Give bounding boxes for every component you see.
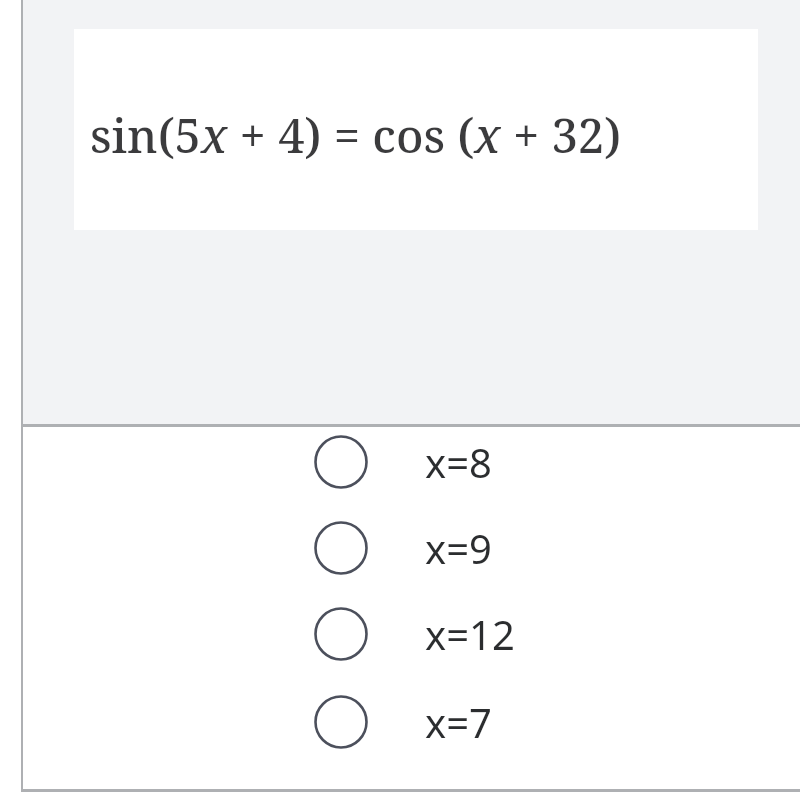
staticText: x=8 (425, 435, 492, 489)
staticText: x=12 (425, 607, 515, 661)
button[interactable]: Option x=8 (23, 434, 800, 520)
button[interactable]: Option x=9 (23, 520, 800, 606)
staticText: x=9 (425, 521, 492, 575)
staticText: x=7 (425, 695, 492, 749)
staticText: sin(5x + 4) = cos (x + 32) (90, 103, 622, 167)
button[interactable]: Option x=7 (23, 694, 800, 780)
button[interactable]: Option x=12 (23, 606, 800, 692)
